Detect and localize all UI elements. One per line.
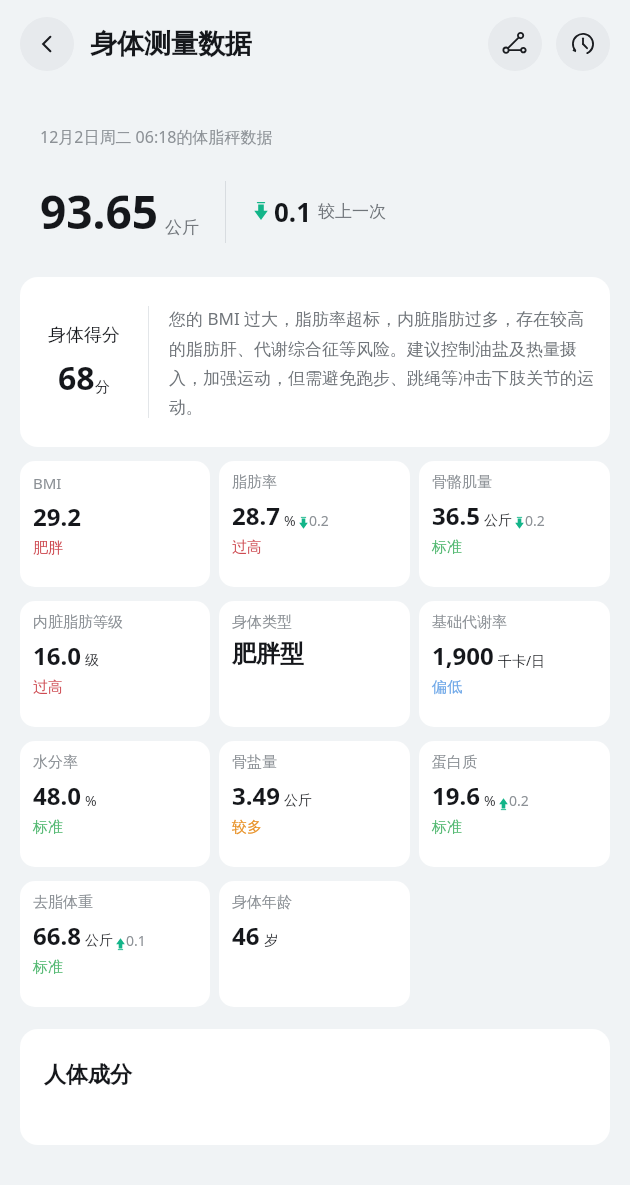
staticText: 公斤	[165, 217, 199, 238]
staticText: 身体测量数据	[90, 27, 252, 61]
staticText: 3.49	[232, 779, 280, 812]
staticText: 66.8	[33, 919, 81, 952]
staticText: 0.2	[525, 511, 545, 530]
staticText: 偏低	[432, 678, 462, 697]
button[interactable]: 脂肪率	[219, 461, 410, 587]
staticText: 过高	[232, 538, 262, 557]
button[interactable]: Back	[20, 17, 74, 71]
staticText: 蛋白质	[432, 753, 477, 772]
staticText: 岁	[264, 932, 278, 950]
staticText: %	[85, 791, 97, 810]
staticText: %	[484, 791, 496, 810]
staticText: 0.2	[509, 791, 529, 810]
staticText: 基础代谢率	[432, 613, 507, 632]
staticText: 公斤	[284, 792, 312, 810]
button[interactable]: BMI	[20, 461, 210, 587]
button[interactable]: History	[556, 17, 610, 71]
button[interactable]: Share	[488, 17, 542, 71]
staticText: 0.1	[274, 194, 312, 229]
staticText: 标准	[432, 818, 462, 837]
staticText: 人体成分	[44, 1061, 132, 1089]
staticText: 19.6	[432, 779, 480, 812]
staticText: 公斤	[85, 932, 113, 950]
button[interactable]: 身体类型	[219, 601, 410, 727]
staticText: 标准	[432, 538, 462, 557]
staticText: 身体类型	[232, 613, 292, 632]
button[interactable]: 水分率	[20, 741, 210, 867]
staticText: 过高	[33, 678, 63, 697]
staticText: 肥胖型	[232, 639, 304, 669]
staticText: 1,900	[432, 639, 494, 672]
staticText: 93.65	[40, 180, 159, 243]
button[interactable]: 骨骼肌量	[419, 461, 610, 587]
button[interactable]: 人体成分	[20, 1029, 610, 1145]
button[interactable]: 骨盐量	[219, 741, 410, 867]
button[interactable]: 内脏脂肪等级	[20, 601, 210, 727]
staticText: 较上一次	[318, 201, 386, 222]
staticText: %	[284, 511, 296, 530]
staticText: 分	[95, 378, 110, 397]
staticText: 16.0	[33, 639, 81, 672]
staticText: 较多	[232, 818, 262, 837]
staticText: 身体得分	[48, 324, 120, 347]
staticText: 标准	[33, 958, 63, 977]
staticText: 48.0	[33, 779, 81, 812]
staticText: 您的 BMI 过大，脂肪率超标，内脏脂肪过多，存在较高的脂肪肝、代谢综合征等风险…	[169, 307, 596, 418]
button[interactable]: 蛋白质	[419, 741, 610, 867]
staticText: 脂肪率	[232, 473, 277, 492]
staticText: 28.7	[232, 499, 280, 532]
staticText: BMI	[33, 473, 62, 493]
staticText: 0.2	[309, 511, 329, 530]
staticText: 标准	[33, 818, 63, 837]
staticText: 千卡/日	[498, 651, 546, 670]
staticText: 29.2	[33, 500, 81, 533]
staticText: 身体年龄	[232, 893, 292, 912]
staticText: 0.1	[126, 931, 146, 950]
staticText: 去脂体重	[33, 893, 93, 912]
button[interactable]: 去脂体重	[20, 881, 210, 1007]
staticText: 公斤	[484, 512, 512, 530]
button[interactable]: 身体得分	[20, 277, 610, 447]
staticText: 内脏脂肪等级	[33, 613, 123, 632]
button[interactable]: 身体年龄	[219, 881, 410, 1007]
staticText: 12月2日周二 06:18的体脂秤数据	[40, 126, 273, 148]
staticText: 骨骼肌量	[432, 473, 492, 492]
staticText: 骨盐量	[232, 753, 277, 772]
staticText: 肥胖	[33, 539, 63, 558]
staticText: 水分率	[33, 753, 78, 772]
button[interactable]: 基础代谢率	[419, 601, 610, 727]
staticText: 36.5	[432, 499, 480, 532]
staticText: 46	[232, 919, 260, 952]
staticText: 68	[58, 356, 95, 400]
staticText: 级	[85, 652, 99, 670]
